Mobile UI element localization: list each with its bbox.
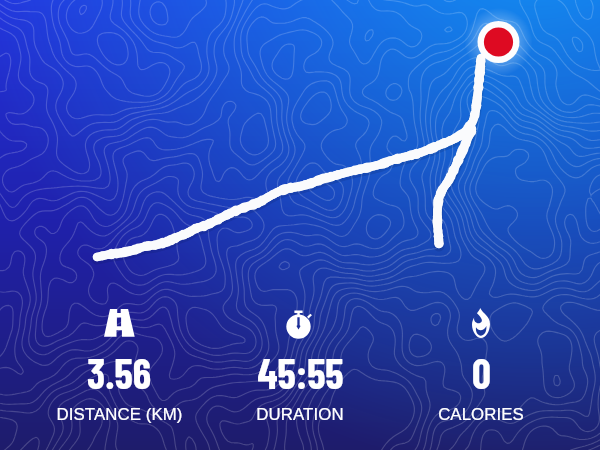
button[interactable]: Duration: [210, 303, 390, 424]
staticText: 3.56: [87, 347, 151, 397]
staticText: CALORIES: [438, 405, 524, 424]
staticText: 45:55: [257, 347, 344, 397]
staticText: DURATION: [256, 405, 344, 424]
staticText: 0: [472, 347, 491, 397]
staticText: DISTANCE (KM): [56, 405, 183, 424]
button[interactable]: Distance: [29, 303, 209, 424]
button[interactable]: Calories: [391, 303, 571, 424]
